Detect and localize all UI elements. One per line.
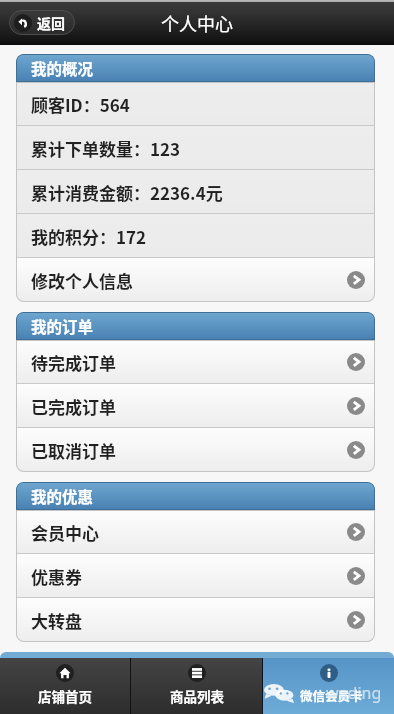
staticText: 我的订单 <box>31 315 94 337</box>
staticText: 我的积分：172 <box>31 224 147 249</box>
staticText: 微信会员卡 <box>300 686 363 704</box>
button[interactable]: 微信会员卡 <box>263 658 394 714</box>
staticText: 优惠券 <box>31 564 82 589</box>
button[interactable]: 优惠券 <box>16 554 375 598</box>
button[interactable]: 顾客ID：564 <box>16 82 375 126</box>
button[interactable]: 已完成订单 <box>16 384 375 428</box>
button[interactable]: 返回 <box>9 10 75 35</box>
staticText: 顾客ID：564 <box>31 92 130 117</box>
staticText: 累计下单数量：123 <box>31 136 181 161</box>
staticText: 个人中心 <box>161 10 233 36</box>
staticText: 待完成订单 <box>31 350 116 375</box>
button[interactable]: 大转盘 <box>16 598 375 642</box>
staticText: 返回 <box>37 13 65 33</box>
staticText: 店铺首页 <box>38 686 92 706</box>
staticText: 已完成订单 <box>31 394 116 419</box>
staticText: 商品列表 <box>170 686 224 706</box>
staticText: 会员中心 <box>31 520 99 545</box>
button[interactable]: 待完成订单 <box>16 340 375 384</box>
button[interactable]: 修改个人信息 <box>16 258 375 302</box>
staticText: 我的优惠 <box>31 485 94 507</box>
button[interactable]: 我的积分：172 <box>16 214 375 258</box>
staticText: 累计消费金额：2236.4元 <box>31 180 223 205</box>
button[interactable]: 累计消费金额：2236.4元 <box>16 170 375 214</box>
staticText: 大转盘 <box>31 608 82 633</box>
button[interactable]: 累计下单数量：123 <box>16 126 375 170</box>
button[interactable]: 店铺首页 <box>0 658 130 714</box>
staticText: 已取消订单 <box>31 438 116 463</box>
staticText: 我的概况 <box>31 57 94 79</box>
staticText: 修改个人信息 <box>31 268 133 293</box>
button[interactable]: 商品列表 <box>131 658 262 714</box>
staticText: weding <box>326 682 382 704</box>
button[interactable]: 已取消订单 <box>16 428 375 472</box>
button[interactable]: 会员中心 <box>16 510 375 554</box>
